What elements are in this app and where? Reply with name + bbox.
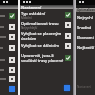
staticText: Upozornit, jsou-li součástí trasy placen…	[21, 53, 64, 63]
button[interactable]: Nastavení tras	[77, 83, 95, 91]
staticText: Nastavení tras	[77, 85, 95, 89]
staticText: Snadná	[77, 25, 92, 30]
button[interactable]: Nejrychlejší	[77, 13, 95, 22]
button[interactable]: Vyhýbat se placeným úsekům	[21, 31, 73, 40]
staticText: Nejkratší	[77, 45, 95, 50]
button[interactable]: Vyhýbat se dálnicím	[21, 41, 73, 50]
button[interactable]	[0, 44, 18, 52]
button[interactable]	[0, 66, 18, 74]
staticText: Vyhýbat se placeným úsekům	[21, 31, 64, 40]
staticText: Nejrychlejší	[21, 26, 38, 30]
button[interactable]	[20, 83, 73, 93]
staticText: Nejrychlejší	[77, 15, 95, 20]
staticText: Typ ovládání	[21, 11, 45, 16]
staticText: Optimalizovat	[77, 8, 95, 12]
button[interactable]: Snadná	[77, 23, 95, 32]
staticText: Mobilní	[21, 16, 32, 20]
staticText: Vyhýbat se dálnicím	[21, 43, 60, 48]
button[interactable]: Ekonomická	[77, 33, 95, 42]
button[interactable]: Optimalizovat trasu	[21, 20, 73, 30]
button[interactable]: Nejkratší	[77, 43, 95, 52]
button[interactable]	[0, 56, 18, 64]
button[interactable]	[0, 23, 18, 31]
button[interactable]: Upozornit, jsou-li součástí trasy placen…	[21, 51, 73, 64]
button[interactable]	[0, 75, 18, 83]
button[interactable]	[0, 33, 18, 41]
button[interactable]	[0, 84, 18, 93]
staticText: Nastavení	[21, 5, 42, 9]
staticText: Ekonomická	[77, 35, 95, 40]
staticText: Optimalizovat trasu	[21, 21, 59, 26]
button[interactable]: Typ ovládání	[21, 10, 73, 20]
button[interactable]	[0, 12, 18, 20]
